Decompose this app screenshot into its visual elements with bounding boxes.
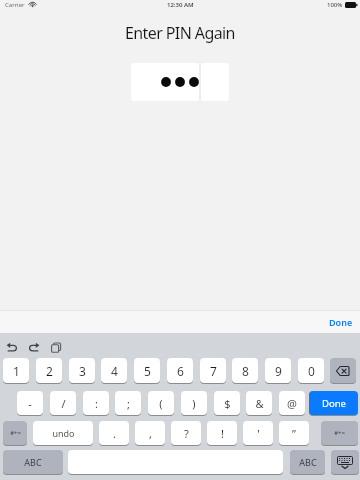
staticText: 1 (13, 363, 20, 379)
button[interactable]: , (135, 421, 165, 446)
staticText: ABC (24, 456, 42, 468)
staticText: Done (329, 316, 353, 328)
staticText: , (149, 426, 152, 441)
staticText: Done (322, 397, 346, 410)
button[interactable] (331, 450, 359, 475)
staticText: Carrier (5, 1, 25, 9)
staticText: 4 (111, 363, 118, 379)
staticText: ; (127, 396, 130, 411)
button[interactable]: 3 (69, 358, 95, 384)
button[interactable]: ( (148, 391, 174, 416)
button[interactable]: - (17, 391, 43, 416)
button[interactable] (330, 358, 356, 384)
staticText: 5 (144, 363, 151, 379)
button[interactable]: ” (279, 421, 309, 446)
button[interactable]: #+= (321, 421, 358, 446)
button[interactable] (131, 63, 229, 101)
staticText: ? (184, 426, 189, 441)
button[interactable]: #+= (3, 421, 27, 446)
button[interactable]: $ (214, 391, 240, 416)
staticText: . (113, 426, 116, 441)
staticText: ( (159, 396, 163, 411)
button[interactable]: / (50, 391, 76, 416)
button[interactable]: undo (33, 421, 93, 446)
staticText: 9 (275, 363, 282, 379)
button[interactable]: @ (279, 391, 305, 416)
staticText: @ (287, 396, 297, 411)
button[interactable]: 2 (36, 358, 62, 384)
button[interactable] (68, 450, 283, 475)
button[interactable] (51, 342, 62, 353)
button[interactable]: 4 (101, 358, 127, 384)
staticText: 100% (327, 1, 343, 9)
staticText: - (28, 396, 32, 411)
staticText: 3 (79, 363, 86, 379)
staticText: Enter PIN Again (125, 22, 235, 44)
staticText: 2 (46, 363, 53, 379)
button[interactable]: 5 (134, 358, 160, 384)
staticText: : (95, 396, 98, 411)
staticText: ABC (299, 456, 317, 468)
staticText: undo (52, 427, 75, 439)
button[interactable]: . (99, 421, 129, 446)
button[interactable]: & (246, 391, 272, 416)
button[interactable]: 7 (200, 358, 226, 384)
staticText: 8 (242, 363, 249, 379)
staticText: 0 (308, 363, 315, 379)
staticText: 6 (177, 363, 184, 379)
staticText: / (61, 396, 66, 411)
staticText: 7 (210, 363, 217, 379)
button[interactable]: ABC (290, 450, 325, 475)
button[interactable]: 1 (3, 358, 29, 384)
staticText: ! (221, 426, 224, 441)
staticText: & (255, 396, 264, 411)
button[interactable]: Done (309, 391, 358, 416)
button[interactable]: ' (243, 421, 273, 446)
button[interactable]: ; (115, 391, 141, 416)
staticText: ' (257, 426, 260, 441)
button[interactable]: ) (181, 391, 207, 416)
button[interactable]: ! (207, 421, 237, 446)
staticText: #+= (334, 429, 345, 437)
button[interactable]: ABC (3, 450, 63, 475)
button[interactable]: ? (171, 421, 201, 446)
staticText: ” (292, 426, 296, 441)
button[interactable] (6, 341, 18, 352)
button[interactable] (28, 341, 40, 352)
button[interactable]: 6 (167, 358, 193, 384)
button[interactable]: 8 (232, 358, 258, 384)
staticText: 12:30 AM (167, 1, 194, 9)
staticText: $ (224, 396, 231, 411)
button[interactable]: Done (322, 310, 360, 333)
button[interactable]: 9 (265, 358, 291, 384)
staticText: ) (192, 396, 196, 411)
button[interactable]: : (83, 391, 109, 416)
staticText: #+= (10, 429, 21, 437)
button[interactable]: 0 (298, 358, 324, 384)
